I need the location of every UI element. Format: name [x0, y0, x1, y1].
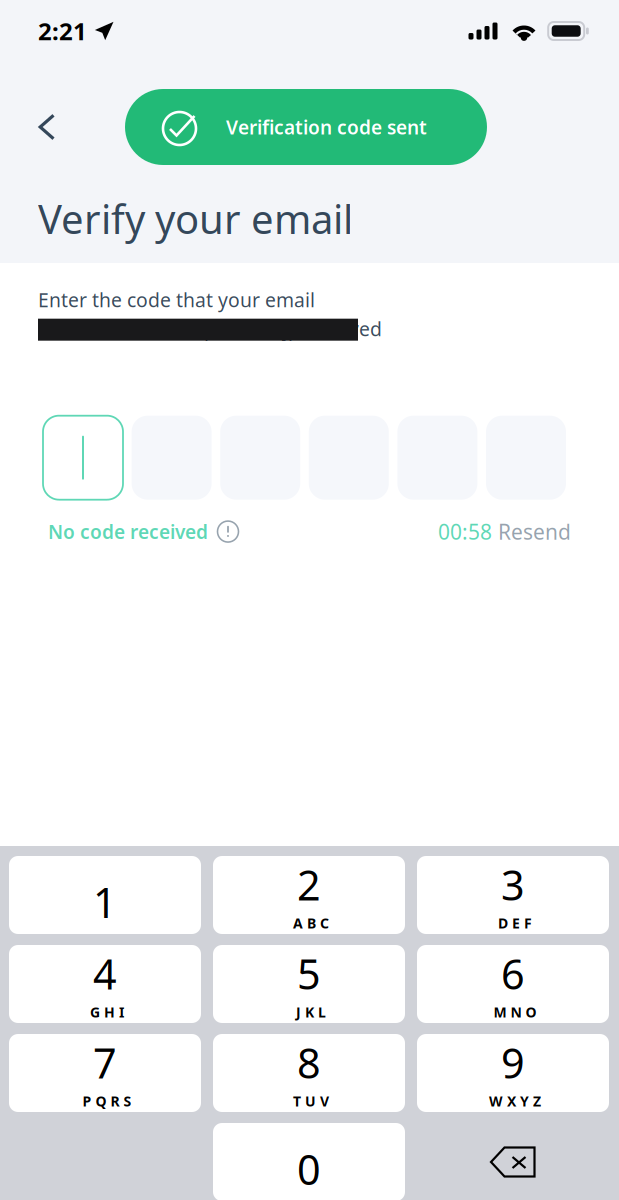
staticText: 00:58 — [438, 518, 492, 545]
staticText: 4 — [93, 946, 117, 1001]
staticText: GHI — [90, 1003, 124, 1021]
button[interactable]: 4 — [9, 945, 201, 1023]
button[interactable]: 8 — [213, 1034, 405, 1112]
staticText: 6 — [501, 946, 525, 1001]
button[interactable]: 7 — [9, 1034, 201, 1112]
staticText: 1 — [93, 875, 117, 929]
staticText: 0 — [297, 1142, 321, 1196]
staticText: Verify your email — [38, 192, 353, 245]
button[interactable]: 0 — [213, 1123, 405, 1200]
staticText: Verification code sent — [226, 114, 427, 140]
staticText: 5 — [297, 946, 321, 1001]
button[interactable]: Delete — [417, 1123, 609, 1200]
staticText: 3 — [501, 857, 525, 912]
staticText: WXYZ — [489, 1092, 541, 1110]
button[interactable]: 1 — [9, 856, 201, 934]
button[interactable]: 2 — [213, 856, 405, 934]
staticText: 2 — [297, 857, 321, 912]
staticText: 2:21 — [38, 15, 87, 47]
button[interactable]: Back — [12, 96, 64, 157]
staticText: DEF — [498, 914, 532, 932]
staticText: TUV — [293, 1092, 329, 1110]
staticText: PQRS — [82, 1092, 131, 1110]
button[interactable]: No code received — [48, 519, 239, 544]
staticText: fumiko.iwamoto@provider.jp received — [38, 316, 382, 341]
staticText: Resend — [498, 518, 571, 545]
staticText: 9 — [501, 1035, 525, 1090]
button[interactable]: 3 — [417, 856, 609, 934]
button[interactable]: 5 — [213, 945, 405, 1023]
button[interactable]: 9 — [417, 1034, 609, 1112]
button[interactable]: 00:58 — [438, 518, 571, 545]
staticText: Enter the code that your email — [38, 287, 315, 313]
staticText: JKL — [296, 1003, 326, 1021]
staticText: 7 — [93, 1035, 117, 1090]
staticText: No code received — [48, 519, 208, 544]
staticText: 8 — [297, 1035, 321, 1090]
staticText: MNO — [493, 1003, 536, 1021]
button[interactable]: 6 — [417, 945, 609, 1023]
staticText: ABC — [293, 914, 329, 932]
